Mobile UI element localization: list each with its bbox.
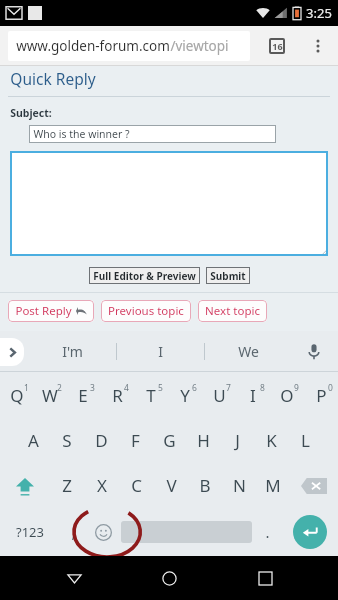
staticText: A [28,429,39,452]
button[interactable] [121,508,252,556]
staticText: L [301,429,310,452]
button[interactable]: We [205,331,292,372]
staticText: Y [180,384,190,407]
staticText: R [112,384,123,407]
staticText: . [265,522,270,542]
button[interactable]: B [188,463,222,508]
button[interactable]: G [152,418,186,463]
staticText: G [163,429,176,452]
staticText: T [146,384,156,407]
button[interactable]: I [117,331,204,372]
button[interactable]: E [66,372,100,418]
button[interactable]: Expand suggestions [0,338,24,366]
staticText: J [235,429,240,452]
button[interactable]: K [254,418,288,463]
staticText: C [131,474,142,497]
button[interactable]: Post Reply [8,300,94,322]
staticText: H [197,429,210,452]
staticText: 16 [272,40,283,52]
button[interactable]: D [84,418,118,463]
staticText: B [199,474,211,497]
button[interactable]: Voice input [292,331,336,372]
staticText: 1 [24,382,29,394]
staticText: I'm [62,342,83,361]
button[interactable]: www.golden-forum.com [8,31,250,61]
button[interactable]: V [154,463,188,508]
staticText: 5 [158,382,163,394]
button[interactable]: Shift [0,463,49,508]
button[interactable]: Next topic [198,300,267,322]
staticText: I [158,342,163,361]
button[interactable]: F [118,418,152,463]
staticText: We [238,342,259,361]
staticText: W [42,384,58,407]
staticText: V [166,474,177,497]
button[interactable]: Back [52,556,96,600]
staticText: N [233,474,246,497]
button[interactable]: N [222,463,256,508]
staticText: X [97,474,107,497]
button[interactable]: Full Editor & Preview [89,267,200,284]
staticText: 6 [192,382,197,394]
staticText: Quick Reply [10,68,96,89]
staticText: P [316,384,327,407]
button[interactable]: More options [302,30,334,62]
staticText: K [266,429,277,452]
button[interactable]: Z [49,463,84,508]
button[interactable]: ?123 [0,508,60,556]
staticText: Previous topic [108,303,184,319]
button[interactable] [10,151,328,256]
button[interactable]: Home [147,556,191,600]
staticText: Who is the winner ? [33,127,130,141]
button[interactable]: Who is the winner ? [29,125,276,143]
staticText: /viewtopi [170,37,229,55]
button[interactable]: . [252,508,282,556]
button[interactable]: W [33,372,66,418]
button[interactable]: O [270,372,304,418]
button[interactable]: Y [168,372,202,418]
staticText: 7 [226,382,231,394]
staticText: D [95,429,108,452]
staticText: ?123 [16,523,44,541]
button[interactable]: , [60,508,86,556]
staticText: Z [62,474,72,497]
button[interactable]: I [236,372,270,418]
staticText: S [62,429,72,452]
button[interactable]: S [50,418,84,463]
button[interactable]: Submit [206,267,250,284]
button[interactable]: Backspace [290,463,338,508]
staticText: , [71,522,76,542]
button[interactable]: Tabs [262,31,292,61]
button[interactable]: I'm [28,331,116,372]
staticText: Next topic [205,303,260,319]
staticText: 2 [57,382,62,394]
button[interactable]: M [256,463,290,508]
button[interactable]: R [100,372,134,418]
staticText: O [280,384,294,407]
staticText: F [131,429,140,452]
button[interactable]: T [134,372,168,418]
staticText: www.golden-forum.com [16,37,170,55]
staticText: 3:25 [306,4,332,22]
button[interactable]: L [288,418,322,463]
staticText: Q [10,384,24,407]
button[interactable]: A [16,418,50,463]
staticText: E [78,384,88,407]
staticText: Full Editor & Preview [93,269,196,283]
button[interactable]: Recent apps [243,556,287,600]
staticText: Submit [210,269,246,283]
button[interactable]: H [186,418,220,463]
button[interactable]: P [304,372,338,418]
button[interactable]: Previous topic [101,300,191,322]
button[interactable]: Enter [282,508,338,556]
staticText: 4 [124,382,129,394]
staticText: 9 [294,382,299,394]
button[interactable]: Q [0,372,33,418]
button[interactable]: Emoji [86,508,121,556]
button[interactable]: J [220,418,254,463]
staticText: Subject: [10,106,52,120]
button[interactable]: U [202,372,236,418]
staticText: M [265,474,281,497]
button[interactable]: C [119,463,154,508]
button[interactable]: X [84,463,119,508]
